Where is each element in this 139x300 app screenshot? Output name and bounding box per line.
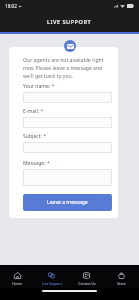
button[interactable] xyxy=(23,117,112,128)
staticText: Contact Us xyxy=(78,281,96,286)
button[interactable] xyxy=(23,142,112,153)
staticText: Home xyxy=(12,281,22,286)
staticText: Our agents are not available right now. … xyxy=(23,57,112,80)
button[interactable]: Live Support xyxy=(34,265,69,288)
button[interactable]: Leave a message xyxy=(23,194,112,211)
button[interactable]: Home xyxy=(0,265,34,288)
staticText: Subject: * xyxy=(23,133,47,140)
staticText: Store xyxy=(117,281,126,286)
staticText: Leave a message xyxy=(47,199,88,206)
staticText: 18:02 xyxy=(5,3,17,9)
button[interactable] xyxy=(23,92,112,103)
button[interactable]: Store xyxy=(104,265,139,288)
button[interactable]: Contact Us xyxy=(69,265,104,288)
button[interactable] xyxy=(23,169,112,186)
staticText: Message: * xyxy=(23,160,50,167)
other: Email us xyxy=(64,40,76,52)
staticText: E-mail: * xyxy=(23,108,44,115)
staticText: LIVE SUPPORT xyxy=(47,18,92,26)
staticText: Your name: * xyxy=(23,83,55,90)
staticText: Live Support xyxy=(42,281,62,286)
